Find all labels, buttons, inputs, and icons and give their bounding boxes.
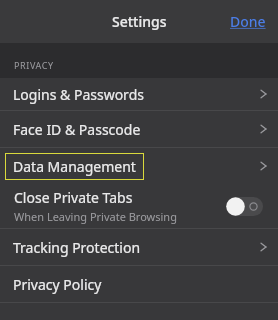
staticText: PRIVACY xyxy=(14,59,54,71)
staticText: Face ID & Passcode xyxy=(13,120,141,139)
button[interactable]: Logins & Passwords xyxy=(0,78,278,110)
staticText: Logins & Passwords xyxy=(13,85,144,104)
button[interactable]: Face ID & Passcode xyxy=(0,111,278,147)
button[interactable]: Close Private Tabs toggle xyxy=(227,197,263,216)
staticText: When Leaving Private Browsing xyxy=(14,209,177,224)
button[interactable]: Done xyxy=(228,8,268,35)
staticText: Done xyxy=(230,12,266,31)
staticText: Privacy Policy xyxy=(13,275,102,294)
button[interactable]: Tracking Protection xyxy=(0,229,278,265)
staticText: Tracking Protection xyxy=(13,238,141,257)
button[interactable]: Privacy Policy xyxy=(0,266,278,302)
button[interactable]: Data Management xyxy=(0,148,278,184)
staticText: Settings xyxy=(112,12,167,31)
staticText: Close Private Tabs xyxy=(14,188,133,207)
button[interactable]: Close Private Tabs xyxy=(0,184,278,228)
staticText: Data Management xyxy=(13,157,136,176)
